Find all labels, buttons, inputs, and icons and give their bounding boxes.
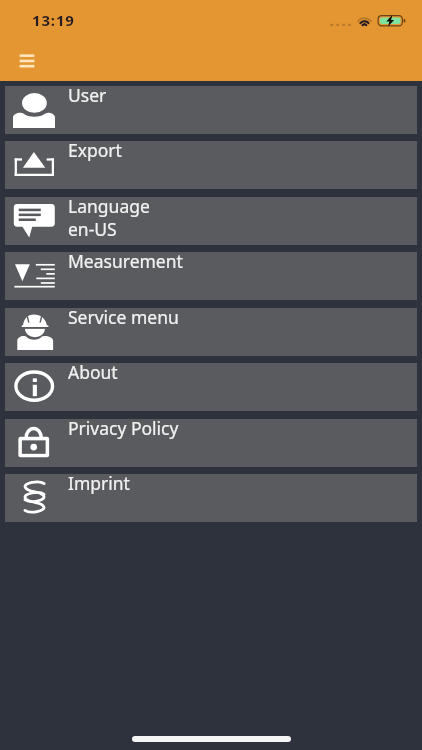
button[interactable]: Language en-US [5,197,417,245]
staticText: Privacy Policy [68,416,179,440]
staticText: Language en-US [68,194,150,241]
button[interactable]: User [5,86,417,134]
button[interactable]: Imprint [5,474,417,522]
staticText: Measurement [68,249,183,273]
button[interactable]: Measurement [5,252,417,300]
button[interactable]: Open navigation menu [5,43,49,77]
staticText: About [68,360,118,384]
button[interactable]: Privacy Policy [5,419,417,467]
staticText: Service menu [68,305,179,329]
button[interactable]: About [5,363,417,411]
staticText: Imprint [68,471,130,495]
button[interactable]: Service menu [5,308,417,356]
staticText: Export [68,138,122,162]
staticText: User [68,83,107,107]
button[interactable]: Export [5,141,417,189]
staticText: 13:19 [32,10,75,30]
